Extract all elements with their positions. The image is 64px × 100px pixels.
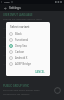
staticText: Carbon xyxy=(15,50,25,54)
staticText: Option item xyxy=(3,62,17,65)
staticText: PUBLIC GROUP SYNC xyxy=(3,84,30,88)
staticText: Settings xyxy=(9,6,21,10)
button[interactable]: Back xyxy=(2,5,8,11)
staticText: 10:45 xyxy=(4,1,10,4)
button[interactable]: Carbon xyxy=(6,49,50,55)
staticText: Android X xyxy=(15,56,28,60)
button[interactable]: Functional xyxy=(6,37,50,43)
staticText: Choose the language used for input xyxy=(3,18,42,21)
staticText: Option item xyxy=(3,53,17,56)
staticText: Select variant xyxy=(10,25,30,29)
staticText: Option item xyxy=(3,44,17,47)
button[interactable]: Android X xyxy=(6,55,50,61)
button[interactable]: Black xyxy=(6,31,50,37)
button[interactable]: Toggle sync xyxy=(54,87,61,94)
staticText: CANCEL xyxy=(35,70,45,73)
staticText: Sync your data across devices when xyxy=(3,89,40,92)
staticText: Deep Sea xyxy=(15,44,27,48)
button[interactable]: Deep Sea xyxy=(6,43,50,49)
staticText: Functional xyxy=(15,38,29,42)
staticText: connected to the network xyxy=(3,93,30,96)
staticText: AOSP Bridge xyxy=(15,62,31,66)
staticText: Option item xyxy=(3,26,17,29)
staticText: Option item xyxy=(3,35,17,38)
button[interactable]: AOSP Bridge xyxy=(6,61,50,67)
staticText: USER INPUT LANGUAGE xyxy=(3,13,33,17)
staticText: Black xyxy=(15,32,22,36)
button[interactable]: CANCEL xyxy=(33,69,47,74)
